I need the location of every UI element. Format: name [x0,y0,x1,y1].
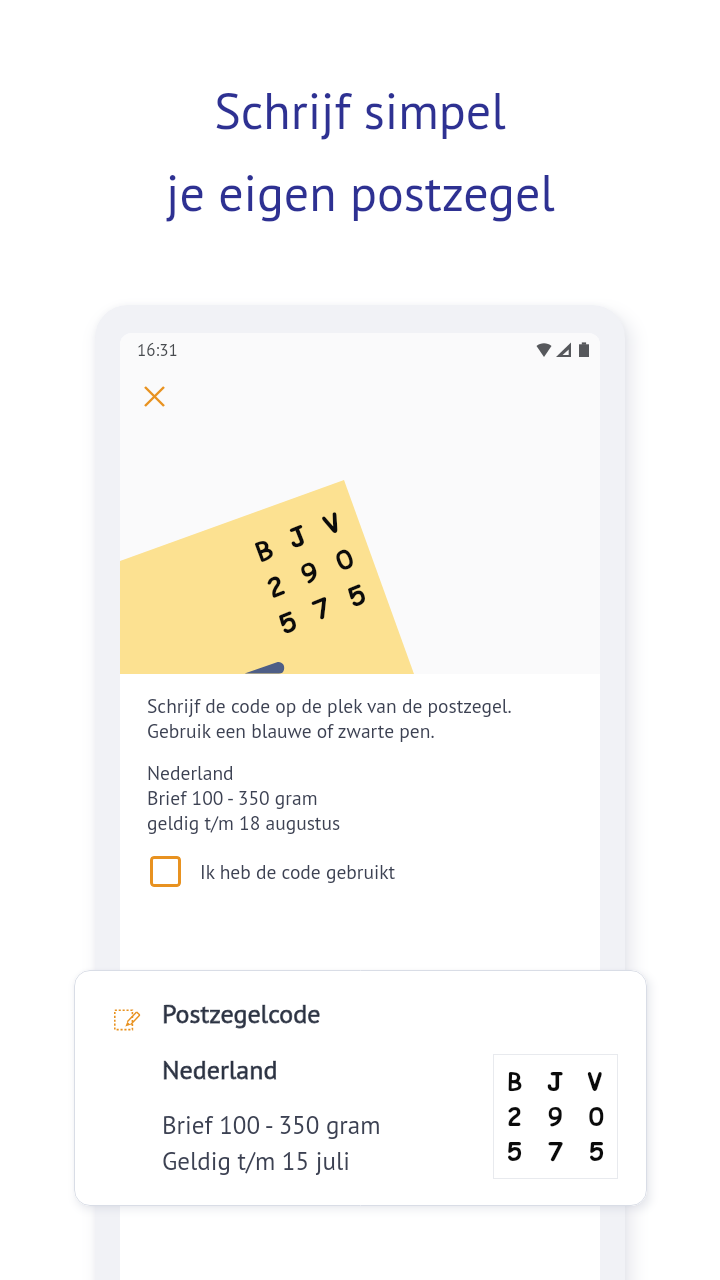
staticText: Geldig t/m 15 juli [162,1145,350,1177]
staticText: 9 [548,1100,563,1133]
staticText: Ik heb de code gebruikt [200,859,396,884]
staticText: 5 [589,1135,604,1168]
staticText: 2 [507,1100,522,1133]
staticText: 0 [589,1100,604,1133]
staticText: 0 [331,540,357,576]
staticText: 5 [507,1135,522,1168]
staticText: Brief 100 - 350 gram [162,1109,381,1141]
staticText: Schrijf de code op de plek van de postze… [147,693,512,718]
button[interactable]: Ik heb de code gebruikt [150,856,396,887]
staticText: J [283,517,311,553]
button[interactable]: Sluiten [134,376,174,416]
staticText: 7 [308,589,334,625]
staticText: 7 [548,1135,563,1168]
staticText: Schrijf simpel [214,78,506,143]
staticText: B [250,531,277,567]
staticText: Nederland [162,1053,278,1087]
staticText: Gebruik een blauwe of zwarte pen. [147,718,435,743]
staticText: 2 [262,567,288,603]
staticText: 5 [274,603,300,639]
staticText: V [318,504,346,540]
staticText: 16:31 [137,339,178,361]
staticText: 5 [343,576,369,612]
staticText: Postzegelcode [162,997,321,1031]
staticText: 9 [296,553,322,589]
staticText: geldig t/m 18 augustus [147,810,341,835]
staticText: J [547,1065,563,1098]
staticText: V [587,1065,604,1098]
staticText: B [507,1065,523,1098]
staticText: Postzegelcode [162,997,321,1031]
staticText: Nederland [162,1053,278,1087]
staticText: Nederland [147,760,234,785]
staticText: Brief 100 - 350 gram [147,785,318,810]
staticText: je eigen postzegel [166,160,555,225]
